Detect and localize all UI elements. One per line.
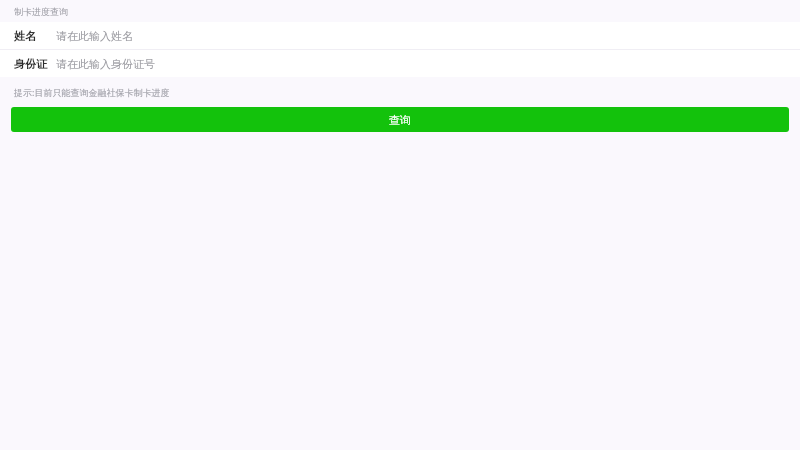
button[interactable]: 身份证 — [0, 50, 800, 77]
staticText: 请在此输入身份证号 — [56, 57, 155, 71]
staticText: 提示:目前只能查询金融社保卡制卡进度 — [14, 86, 170, 98]
button[interactable]: 查询 — [11, 107, 789, 132]
staticText: 姓名 — [14, 29, 36, 43]
staticText: 查询 — [389, 113, 411, 127]
button[interactable]: 姓名 — [0, 22, 800, 49]
staticText: 请在此输入姓名 — [56, 29, 133, 43]
staticText: 身份证 — [14, 57, 47, 71]
staticText: 制卡进度查询 — [14, 6, 68, 17]
